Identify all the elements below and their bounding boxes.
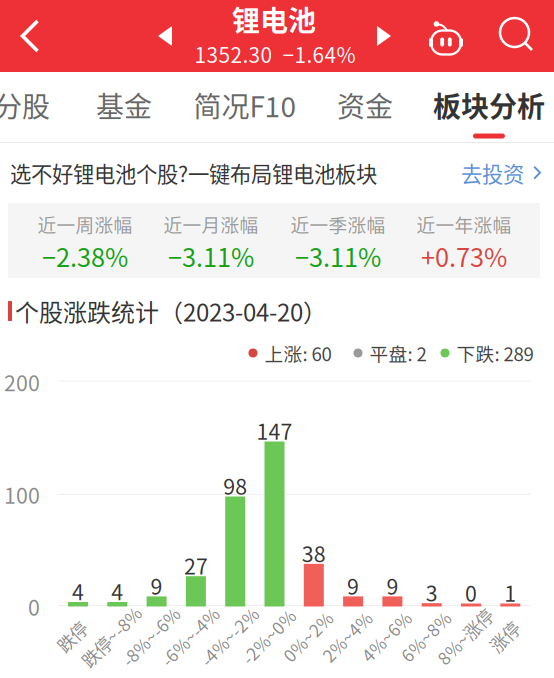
button[interactable]: 简况F10 [185, 70, 305, 140]
button[interactable]: 板块分析 [424, 70, 554, 140]
staticText: 4 [72, 576, 84, 606]
staticText: -6%~-4% [153, 624, 227, 649]
staticText: 9 [347, 570, 359, 601]
staticText: 平盘: 2 [369, 339, 426, 366]
staticText: 个股涨跌统计（2023-04-20） [15, 294, 327, 328]
staticText: 下跌: 289 [456, 339, 533, 366]
staticText: 100 [4, 479, 40, 510]
staticText: 近一月涨幅 [163, 210, 258, 237]
staticText: 98 [223, 470, 247, 501]
staticText: 6%~8% [395, 624, 457, 649]
button[interactable]: 智能助手 [421, 4, 471, 70]
staticText: 1352.30 −1.64% [194, 39, 355, 69]
staticText: 2%~4% [316, 624, 378, 649]
staticText: 锂电池 [232, 0, 316, 39]
button[interactable]: 基金 [82, 70, 166, 140]
staticText: 近一季涨幅 [290, 210, 385, 237]
staticText: 8%~涨停 [430, 624, 500, 649]
staticText: −3.11% [168, 238, 254, 274]
staticText: 去投资 [461, 158, 524, 188]
staticText: 1 [504, 577, 516, 608]
staticText: 近一周涨幅 [37, 210, 132, 237]
staticText: 分股 [0, 85, 50, 125]
staticText: 0 [465, 577, 477, 608]
staticText: +0.73% [421, 238, 507, 274]
staticText: 3 [426, 577, 438, 608]
staticText: 上涨: 60 [264, 339, 331, 366]
staticText: 跌停 [55, 624, 89, 649]
staticText: 近一年涨幅 [416, 210, 511, 237]
staticText: -8%~-6% [114, 624, 188, 649]
staticText: 38 [302, 537, 326, 568]
button[interactable]: 返回 [2, 0, 58, 72]
staticText: 资金 [337, 85, 393, 125]
staticText: 简况F10 [193, 85, 296, 125]
button[interactable]: 下一个 [362, 12, 406, 60]
staticText: -4%~-2% [192, 624, 266, 649]
staticText: 9 [386, 570, 398, 601]
staticText: 4%~6% [355, 624, 417, 649]
button[interactable]: 分股 [0, 70, 58, 140]
staticText: 板块分析 [433, 85, 545, 125]
staticText: 0 [28, 591, 40, 622]
staticText: −3.11% [295, 238, 381, 274]
button[interactable]: 资金 [323, 70, 407, 140]
button[interactable]: 选不好锂电池个股?一键布局锂电池板块 [0, 143, 554, 203]
staticText: 跌停~-8% [73, 624, 149, 649]
button[interactable]: 上一个 [143, 12, 187, 60]
button[interactable]: 搜索 [492, 2, 542, 68]
staticText: 200 [4, 367, 40, 397]
staticText: 0%~2% [277, 624, 339, 649]
staticText: -2%~0% [234, 624, 302, 649]
staticText: 147 [256, 415, 292, 446]
staticText: 基金 [96, 85, 152, 125]
staticText: 涨停 [487, 624, 521, 649]
staticText: −2.38% [42, 238, 128, 274]
staticText: 9 [151, 570, 163, 601]
staticText: 选不好锂电池个股?一键布局锂电池板块 [10, 158, 377, 188]
staticText: 27 [184, 550, 208, 581]
staticText: 4 [111, 576, 123, 606]
